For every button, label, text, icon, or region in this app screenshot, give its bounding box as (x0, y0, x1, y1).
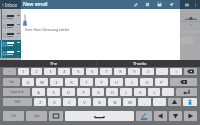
button[interactable]: Backspace (170, 78, 197, 86)
button[interactable]: G (92, 88, 104, 96)
button[interactable]: . (153, 98, 166, 106)
staticText: 2 (35, 69, 38, 74)
button[interactable]: Keyboard settings (49, 111, 63, 121)
button[interactable]: ~ (3, 68, 16, 75)
staticText: C (68, 100, 71, 105)
staticText: V (83, 100, 86, 105)
button[interactable]: C (63, 98, 76, 106)
button[interactable]: Handwriting (136, 111, 152, 121)
button[interactable] (0, 40, 21, 49)
button[interactable]: R (65, 78, 78, 86)
staticText: Q (26, 80, 30, 85)
staticText: Sent from Samsung tablet (25, 27, 70, 32)
staticText: 6 (91, 69, 94, 74)
button[interactable]: B (93, 98, 106, 106)
staticText: The (50, 61, 57, 66)
button[interactable]: Enter (176, 88, 197, 96)
staticText: Sym (34, 114, 40, 118)
button[interactable]: Space (65, 111, 134, 121)
button[interactable]: Shift (3, 98, 32, 106)
button[interactable]: L (148, 88, 160, 96)
button[interactable]: N (108, 98, 121, 106)
staticText: L (153, 90, 156, 95)
button[interactable]: X (48, 98, 61, 106)
staticText: 1 (22, 69, 25, 74)
staticText: 0 (147, 69, 150, 74)
button[interactable]: 7 (100, 68, 112, 75)
button[interactable]: E (50, 78, 63, 86)
button[interactable]: Sym (26, 111, 47, 121)
button[interactable]: H (106, 88, 118, 96)
button[interactable]: Voice input (183, 98, 197, 106)
button[interactable]: 0 (142, 68, 154, 75)
button[interactable]: Inbox (0, 0, 21, 9)
button[interactable]: 2 (31, 68, 42, 75)
button[interactable]: Backspace (184, 68, 197, 75)
button[interactable] (0, 22, 21, 31)
button[interactable]: 8 (114, 68, 126, 75)
staticText: E (55, 80, 58, 85)
staticText: Shift (14, 100, 21, 104)
button[interactable]: Z (34, 98, 46, 106)
staticText: - (161, 69, 163, 74)
staticText: Y (100, 80, 103, 85)
button[interactable]: 5 (72, 68, 84, 75)
button[interactable]: Caps lock (3, 88, 30, 96)
button[interactable]: 3 (44, 68, 56, 75)
button[interactable] (0, 13, 21, 22)
staticText: . (159, 100, 161, 105)
button[interactable]: Y (95, 78, 108, 86)
button[interactable] (0, 58, 21, 60)
staticText: Caps lock (10, 90, 24, 94)
button[interactable]: Send (165, 0, 177, 9)
button[interactable]: 6 (86, 68, 98, 75)
button[interactable]: K (134, 88, 146, 96)
button[interactable]: V (78, 98, 91, 106)
button[interactable] (0, 9, 21, 13)
button[interactable]: , (138, 98, 151, 106)
button[interactable]: W (36, 78, 48, 86)
button[interactable]: S (47, 88, 60, 96)
button[interactable]: = (170, 68, 182, 75)
button[interactable]: D (62, 88, 75, 96)
button[interactable]: Apps (182, 0, 191, 9)
button[interactable]: P (155, 78, 168, 86)
button[interactable]: 1 (18, 68, 29, 75)
button[interactable]: Discard (141, 0, 153, 9)
button[interactable]: 9 (128, 68, 140, 75)
button[interactable]: Ctrl (3, 111, 24, 121)
button[interactable]: M (123, 98, 136, 106)
button[interactable]: Q (22, 78, 34, 86)
staticText: I (131, 80, 133, 85)
staticText: 7 (105, 69, 108, 74)
button[interactable]: I (125, 78, 138, 86)
staticText: 3 (49, 69, 52, 74)
button[interactable]: U (110, 78, 123, 86)
button[interactable]: Up (168, 98, 181, 106)
staticText: Ctrl (11, 114, 16, 118)
button[interactable]: A (32, 88, 45, 96)
staticText: H (111, 90, 114, 95)
staticText: New email (23, 1, 48, 8)
button[interactable]: Tab (3, 78, 20, 86)
button[interactable]: T (80, 78, 93, 86)
button[interactable] (0, 49, 21, 58)
button[interactable]: - (156, 68, 168, 75)
staticText: K (139, 90, 142, 95)
staticText: ; (167, 90, 169, 95)
button[interactable]: Save draft (153, 0, 165, 9)
staticText: N (113, 100, 117, 105)
staticText: G (97, 90, 100, 95)
button[interactable]: F (77, 88, 90, 96)
button[interactable]: Left (154, 111, 167, 121)
button[interactable]: J (120, 88, 132, 96)
button[interactable]: O (140, 78, 153, 86)
button[interactable] (0, 31, 21, 40)
button[interactable]: Down (169, 111, 182, 121)
staticText: Tab (9, 80, 14, 84)
button[interactable]: Attach (129, 0, 141, 9)
button[interactable]: Right (184, 111, 197, 121)
button[interactable]: More options (191, 0, 200, 9)
button[interactable]: ; (162, 88, 174, 96)
button[interactable]: 4 (58, 68, 70, 75)
